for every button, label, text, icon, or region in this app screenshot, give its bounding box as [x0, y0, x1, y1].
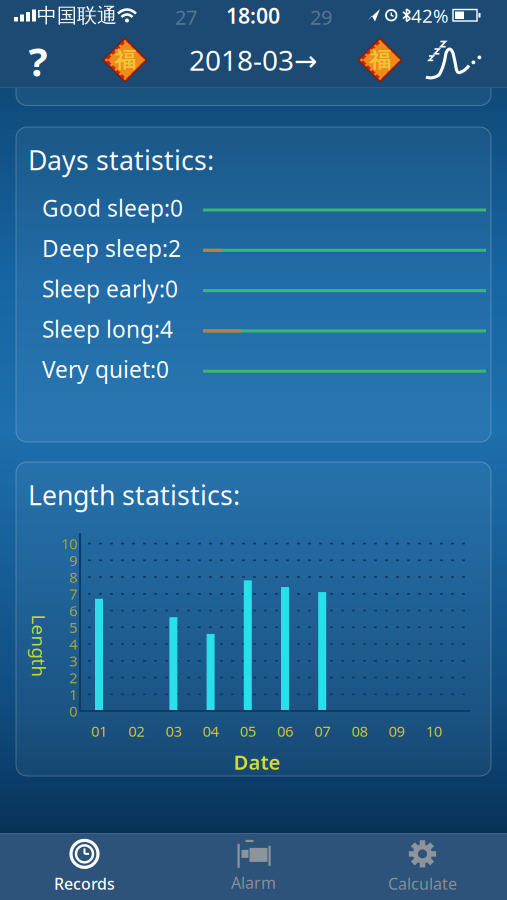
staticText: Days statistics:: [28, 142, 214, 178]
staticText: 09: [389, 721, 405, 741]
staticText: 7: [69, 584, 77, 603]
staticText: Deep sleep:2: [42, 233, 181, 263]
staticText: Length: [7, 634, 70, 658]
button[interactable]: Records: [0, 833, 169, 900]
staticText: 8: [69, 567, 77, 587]
staticText: 5: [69, 617, 77, 637]
staticText: 2018-03→: [189, 41, 317, 79]
staticText: 42%: [411, 3, 449, 28]
staticText: 27: [175, 4, 197, 30]
staticText: 18:00: [226, 1, 280, 30]
staticText: Alarm: [231, 872, 276, 893]
staticText: Date: [233, 749, 280, 775]
staticText: 福: [114, 47, 135, 73]
staticText: 3: [69, 651, 77, 670]
button[interactable]: 福: [103, 38, 147, 82]
staticText: 福: [369, 47, 390, 73]
staticText: Sleep long:4: [42, 314, 173, 344]
staticText: 08: [351, 721, 367, 741]
staticText: 05: [240, 721, 256, 741]
staticText: Records: [54, 873, 115, 894]
staticText: 9: [69, 550, 77, 570]
button[interactable]: Calculate: [338, 833, 507, 900]
button[interactable]: Alarm: [169, 833, 338, 900]
staticText: 03: [165, 721, 181, 741]
staticText: 06: [277, 721, 293, 741]
staticText: Good sleep:0: [42, 193, 183, 223]
staticText: 01: [91, 721, 107, 741]
staticText: 02: [128, 721, 144, 741]
staticText: Calculate: [388, 873, 457, 894]
button[interactable]: [427, 37, 483, 85]
staticText: 2: [69, 668, 77, 687]
staticText: Very quiet:0: [42, 354, 169, 384]
staticText: Length statistics:: [28, 477, 240, 513]
staticText: 0: [69, 701, 77, 721]
button[interactable]: 2018-03→: [189, 41, 317, 79]
staticText: 中国联通: [37, 3, 117, 28]
button[interactable]: ?: [16, 39, 60, 83]
staticText: 10: [61, 534, 77, 553]
staticText: 04: [203, 721, 219, 741]
staticText: Sleep early:0: [42, 273, 178, 304]
staticText: 07: [314, 721, 330, 741]
staticText: 4: [69, 634, 77, 654]
staticText: ?: [28, 34, 47, 87]
button[interactable]: 福: [358, 38, 402, 82]
staticText: 10: [426, 721, 442, 741]
staticText: 6: [69, 601, 77, 620]
staticText: 29: [310, 4, 332, 30]
staticText: 1: [69, 684, 77, 704]
